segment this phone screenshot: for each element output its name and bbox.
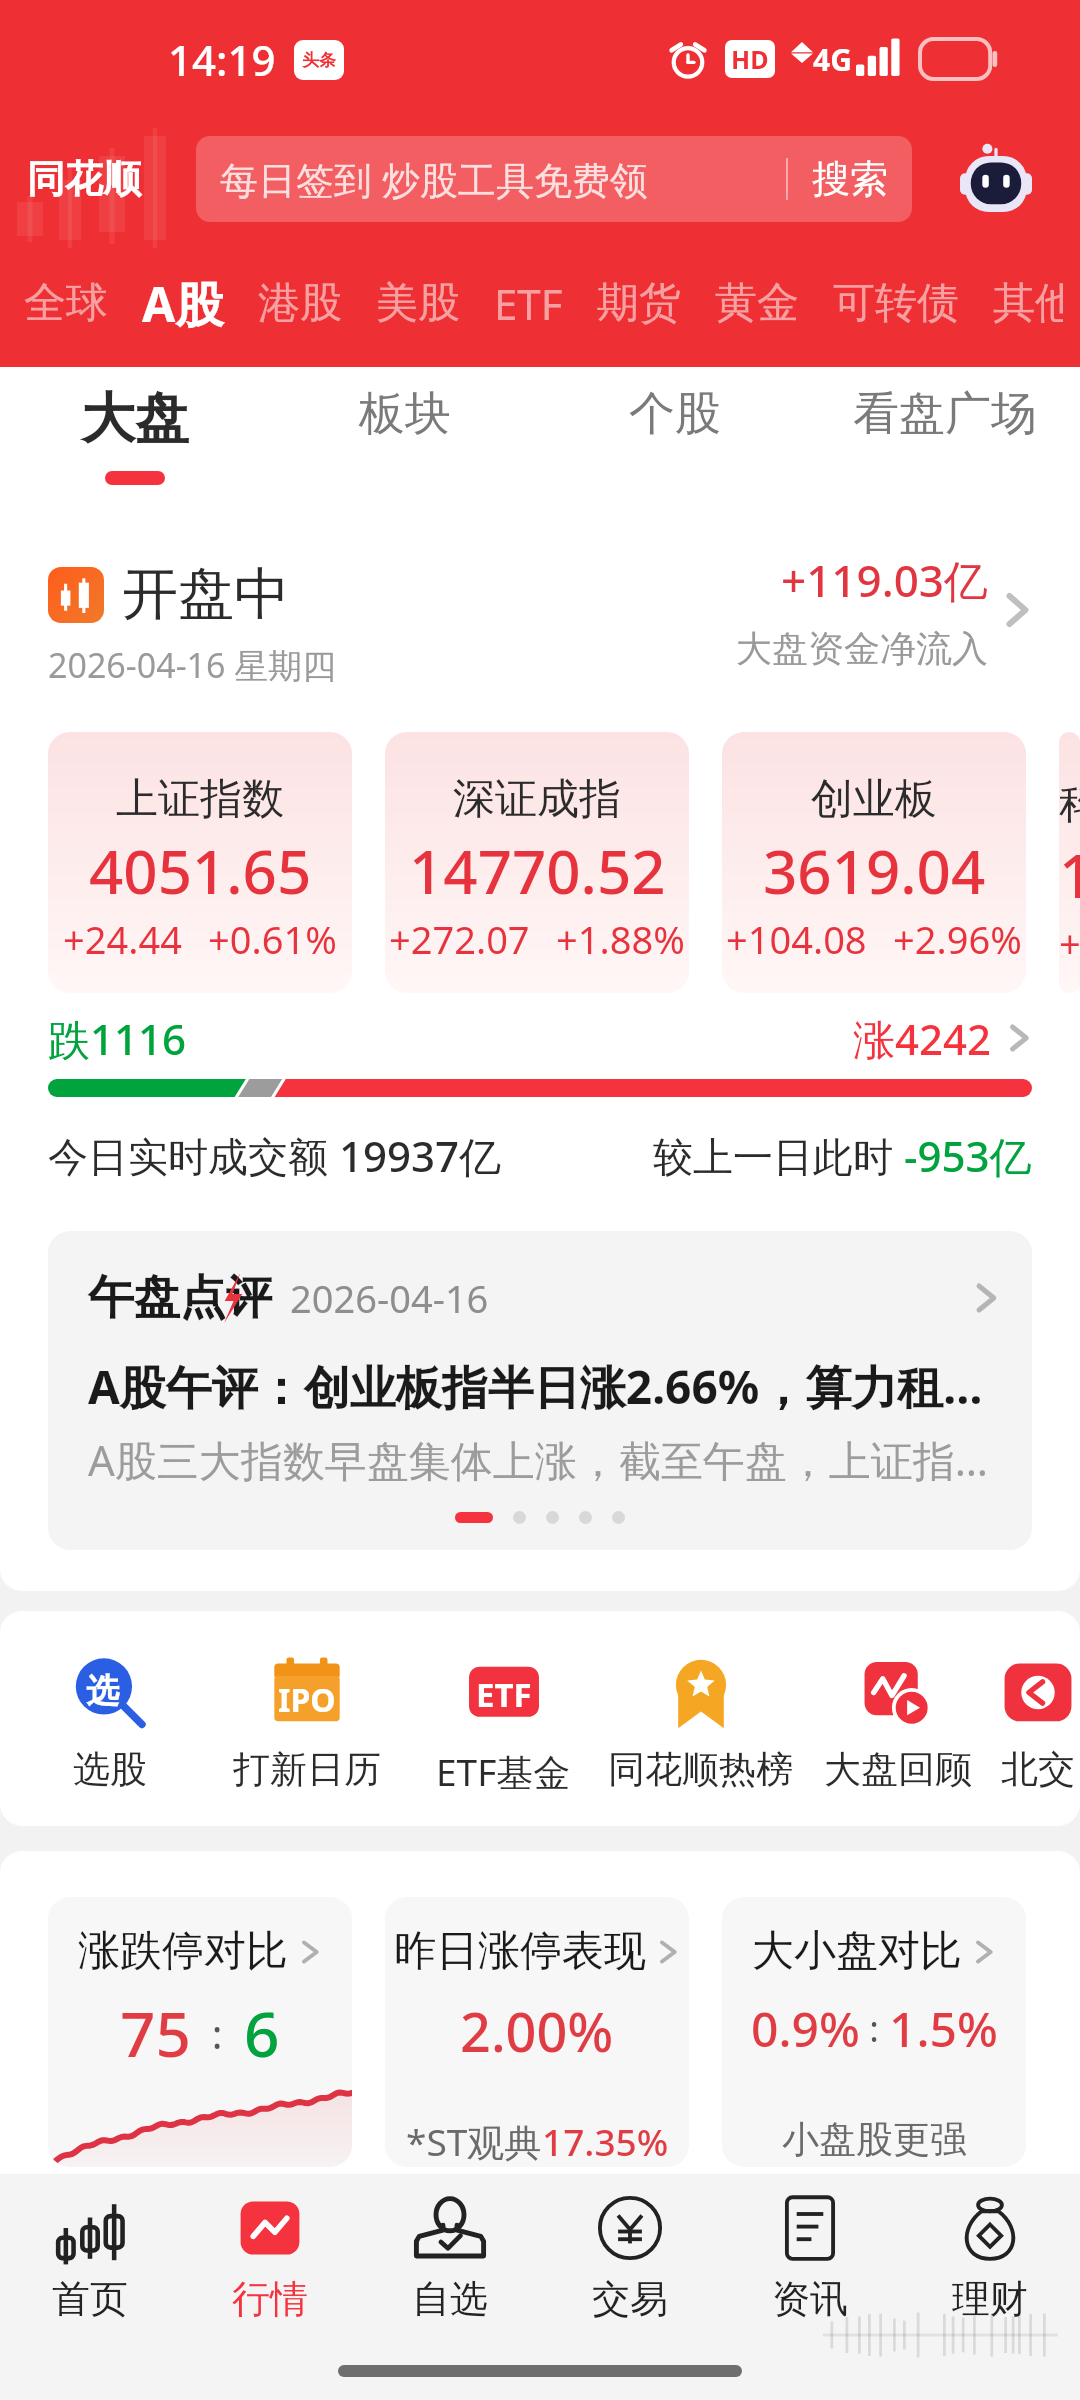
staticText: 14:19 bbox=[168, 31, 276, 88]
staticText: 全球 bbox=[24, 277, 108, 330]
staticText: +24.44 bbox=[63, 913, 182, 965]
button[interactable]: 昨日涨停表现 bbox=[385, 1897, 689, 2167]
button[interactable]: 美股 bbox=[376, 277, 460, 330]
button[interactable]: 每日签到 炒股工具免费领 bbox=[196, 136, 912, 222]
staticText: 港股 bbox=[258, 277, 342, 330]
staticText: 17.35% bbox=[542, 2116, 669, 2166]
button[interactable]: 开盘中 bbox=[48, 510, 1032, 710]
staticText: 美股 bbox=[376, 277, 460, 330]
staticText: ETF bbox=[476, 1672, 532, 1717]
button[interactable]: IPO bbox=[208, 1656, 405, 1793]
staticText: 昨日涨停表现 bbox=[394, 1925, 646, 1978]
staticText: 每日签到 炒股工具免费领 bbox=[220, 153, 648, 205]
button[interactable]: 首页 bbox=[0, 2174, 180, 2342]
staticText: 打新日历 bbox=[233, 1746, 381, 1793]
staticText: 2026-04-16 星期四 bbox=[48, 642, 337, 688]
staticText: ETF bbox=[494, 275, 563, 332]
button[interactable]: 大小盘对比 bbox=[722, 1897, 1026, 2167]
staticText: 6 bbox=[244, 1991, 280, 2075]
staticText: 创业板 bbox=[811, 773, 937, 826]
staticText: 头条 bbox=[302, 50, 336, 71]
staticText: 开盘中 bbox=[122, 559, 290, 630]
staticText: 4051.65 bbox=[89, 830, 312, 912]
button[interactable]: 看盘广场 bbox=[810, 367, 1080, 510]
staticText: 1.5% bbox=[889, 1996, 998, 2061]
button[interactable]: A股 bbox=[142, 271, 224, 337]
staticText: 资讯 bbox=[772, 2275, 848, 2323]
button[interactable]: 资讯 bbox=[720, 2174, 900, 2342]
staticText: 涨跌停对比 bbox=[78, 1925, 288, 1978]
button[interactable]: 自选 bbox=[360, 2174, 540, 2342]
staticText: 小盘股更强 bbox=[782, 2116, 967, 2163]
staticText: -953亿 bbox=[904, 1127, 1032, 1183]
button[interactable]: 同花顺热榜 bbox=[602, 1656, 799, 1793]
staticText: A股 bbox=[142, 271, 224, 337]
staticText: 搜索 bbox=[812, 155, 888, 203]
staticText: 交易 bbox=[592, 2275, 668, 2323]
staticText: 2026-04-16 bbox=[290, 1272, 489, 1324]
staticText: 大盘资金净流入 bbox=[736, 626, 988, 671]
staticText: +18.20 bbox=[1059, 917, 1080, 969]
button[interactable]: 其他 bbox=[993, 277, 1063, 330]
staticText: : bbox=[860, 2004, 889, 2053]
button[interactable]: 理财 bbox=[900, 2174, 1080, 2342]
button[interactable]: 大盘 bbox=[0, 367, 270, 510]
staticText: 期货 bbox=[597, 277, 681, 330]
staticText: +119.03亿 bbox=[781, 550, 988, 610]
staticText: 大盘回顾 bbox=[824, 1746, 972, 1793]
staticText: 3619.04 bbox=[763, 830, 986, 912]
staticText: 大盘 bbox=[81, 385, 189, 453]
staticText: IPO bbox=[278, 1678, 336, 1722]
staticText: 4G bbox=[813, 39, 852, 80]
staticText: 其他 bbox=[993, 277, 1063, 330]
button[interactable]: 个股 bbox=[540, 367, 810, 510]
staticText: 14770.52 bbox=[409, 830, 666, 912]
button[interactable]: 午盘点评 bbox=[48, 1231, 1032, 1550]
staticText: 今日实时成交额 bbox=[48, 1128, 339, 1183]
staticText: 首页 bbox=[52, 2275, 128, 2323]
button[interactable]: 行情 bbox=[180, 2174, 360, 2342]
staticText: 午盘点评 bbox=[88, 1269, 272, 1327]
staticText: A股三大指数早盘集体上涨，截至午盘，上证指… bbox=[88, 1431, 989, 1488]
staticText: 自选 bbox=[412, 2275, 488, 2323]
staticText: +2.96% bbox=[893, 913, 1022, 965]
button[interactable]: ETF bbox=[494, 275, 563, 332]
staticText: 行情 bbox=[232, 2275, 308, 2323]
staticText: 深证成指 bbox=[453, 773, 621, 826]
staticText: 板块 bbox=[359, 385, 451, 443]
button[interactable]: ETF bbox=[405, 1656, 602, 1797]
button[interactable]: 交易 bbox=[540, 2174, 720, 2342]
button[interactable]: 上证指数 bbox=[48, 732, 352, 993]
button[interactable]: 黄金 bbox=[715, 277, 799, 330]
button[interactable]: 全球 bbox=[24, 277, 108, 330]
staticText: 跌1116 bbox=[48, 1010, 187, 1066]
staticText: 大小盘对比 bbox=[752, 1925, 962, 1978]
staticText: 可转债 bbox=[833, 277, 959, 330]
staticText: 选 bbox=[86, 1670, 119, 1712]
button[interactable]: AI assistant bbox=[912, 118, 1080, 240]
button[interactable]: 选 bbox=[11, 1656, 208, 1793]
button[interactable]: 深证成指 bbox=[385, 732, 689, 993]
button[interactable]: 创业板 bbox=[722, 732, 1026, 993]
staticText: +104.08 bbox=[726, 913, 867, 965]
button[interactable]: 跌1116 bbox=[48, 1010, 1032, 1066]
button[interactable]: 可转债 bbox=[833, 277, 959, 330]
staticText: 同花顺热榜 bbox=[608, 1746, 793, 1793]
staticText: 选股 bbox=[73, 1746, 147, 1793]
staticText: 19937亿 bbox=[339, 1127, 502, 1183]
staticText: 北交 bbox=[1001, 1746, 1075, 1793]
staticText: 涨4242 bbox=[853, 1010, 992, 1066]
button[interactable]: 期货 bbox=[597, 277, 681, 330]
button[interactable]: 北交 bbox=[996, 1656, 1080, 1793]
button[interactable]: 大盘回顾 bbox=[799, 1656, 996, 1793]
staticText: 2.00% bbox=[460, 1994, 614, 2068]
staticText: 个股 bbox=[629, 385, 721, 443]
staticText: 同花顺 bbox=[27, 155, 141, 203]
staticText: ETF基金 bbox=[436, 1746, 571, 1797]
button[interactable]: 涨跌停对比 bbox=[48, 1897, 352, 2167]
button[interactable]: 科创50 bbox=[1059, 732, 1080, 993]
staticText: HD bbox=[731, 42, 769, 76]
staticText: 看盘广场 bbox=[853, 385, 1037, 443]
button[interactable]: 板块 bbox=[270, 367, 540, 510]
button[interactable]: 港股 bbox=[258, 277, 342, 330]
